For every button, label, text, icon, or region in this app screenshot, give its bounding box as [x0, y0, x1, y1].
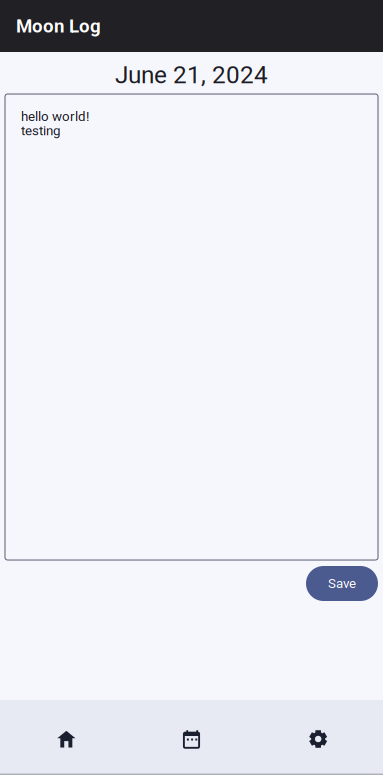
- button[interactable]: Home: [0, 700, 128, 773]
- staticText: June 21, 2024: [115, 61, 268, 89]
- button[interactable]: Calendar: [128, 700, 255, 773]
- button[interactable]: Save: [306, 566, 378, 601]
- staticText: Save: [328, 576, 356, 591]
- button[interactable]: Settings: [255, 700, 383, 773]
- staticText: Moon Log: [16, 15, 101, 37]
- staticText: hello world! testing: [21, 109, 89, 138]
